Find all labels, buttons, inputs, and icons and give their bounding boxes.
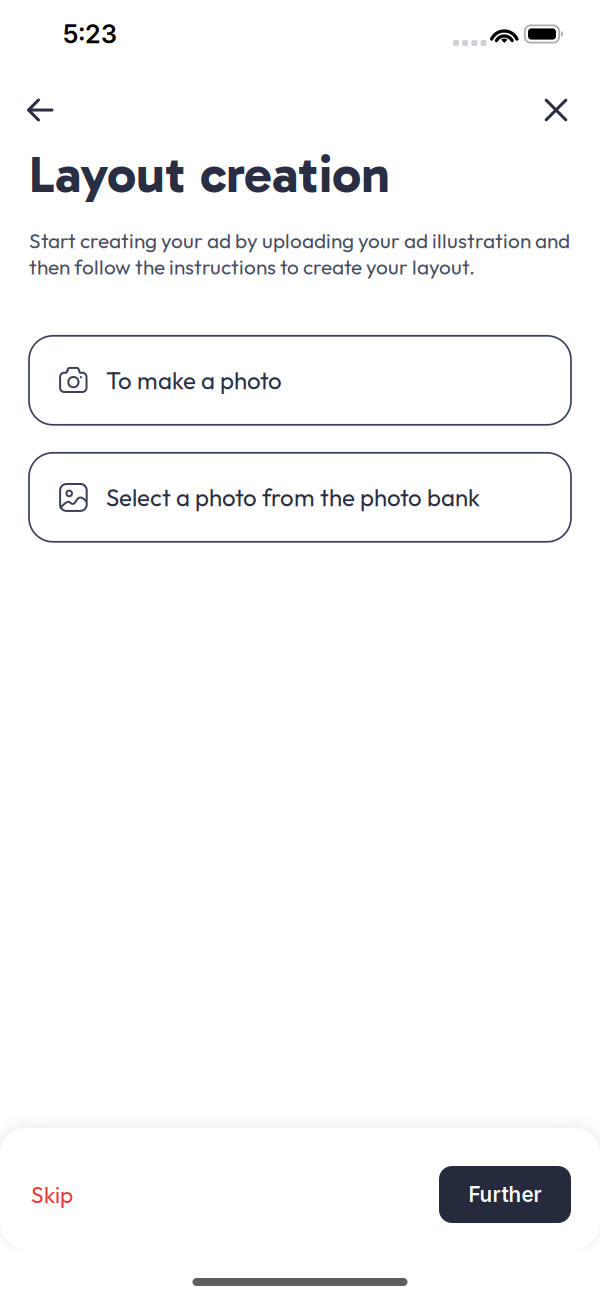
staticText: Further <box>468 1182 541 1207</box>
button[interactable]: To make a photo <box>29 336 571 425</box>
staticText: Skip <box>31 1180 73 1209</box>
staticText: To make a photo <box>106 365 282 395</box>
staticText: 5:23 <box>63 19 117 49</box>
staticText: Layout creation <box>29 143 390 205</box>
staticText: Select a photo from the photo bank <box>106 482 480 512</box>
button[interactable]: Close <box>534 88 578 132</box>
button[interactable]: Select a photo from the photo bank <box>29 453 571 542</box>
button[interactable]: Skip <box>21 1166 83 1223</box>
button[interactable]: Further <box>439 1166 571 1223</box>
button[interactable]: Back <box>18 88 62 132</box>
staticText: Start creating your ad by uploading your… <box>29 227 570 280</box>
